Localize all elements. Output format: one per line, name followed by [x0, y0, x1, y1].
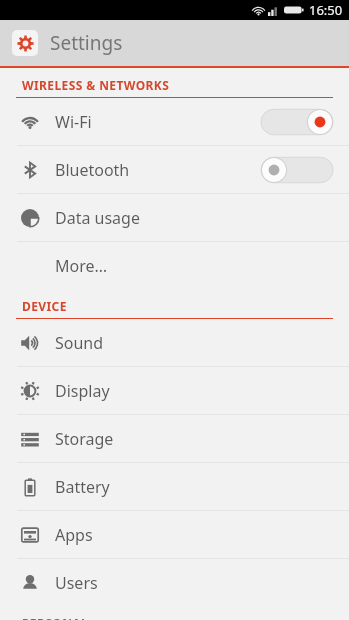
button[interactable]: Storage [0, 415, 349, 462]
button[interactable]: Battery [0, 463, 349, 510]
staticText: DEVICE [22, 298, 67, 314]
button[interactable]: Bluetooth [0, 146, 349, 193]
staticText: Bluetooth [55, 159, 130, 181]
staticText: Sound [55, 332, 104, 354]
staticText: Data usage [55, 207, 140, 229]
staticText: Wi-Fi [55, 111, 92, 133]
staticText: Storage [55, 428, 114, 450]
button[interactable]: Settings [0, 20, 349, 66]
button[interactable]: Toggle on [261, 107, 333, 137]
staticText: Apps [55, 524, 93, 546]
button[interactable]: Sound [0, 319, 349, 366]
staticText: PERSONAL [22, 615, 89, 620]
staticText: More… [55, 255, 108, 277]
button[interactable]: Data usage [0, 194, 349, 241]
staticText: Display [55, 380, 110, 402]
staticText: Battery [55, 476, 110, 498]
button[interactable]: More… [0, 242, 349, 289]
button[interactable]: Apps [0, 511, 349, 558]
button[interactable]: Users [0, 559, 349, 606]
staticText: Users [55, 572, 98, 594]
button[interactable]: Wi-Fi [0, 98, 349, 145]
staticText: Settings [50, 30, 123, 56]
staticText: WIRELESS & NETWORKS [22, 77, 170, 93]
button[interactable]: Display [0, 367, 349, 414]
staticText: 16:50 [309, 1, 343, 19]
button[interactable]: Toggle off [261, 155, 333, 185]
